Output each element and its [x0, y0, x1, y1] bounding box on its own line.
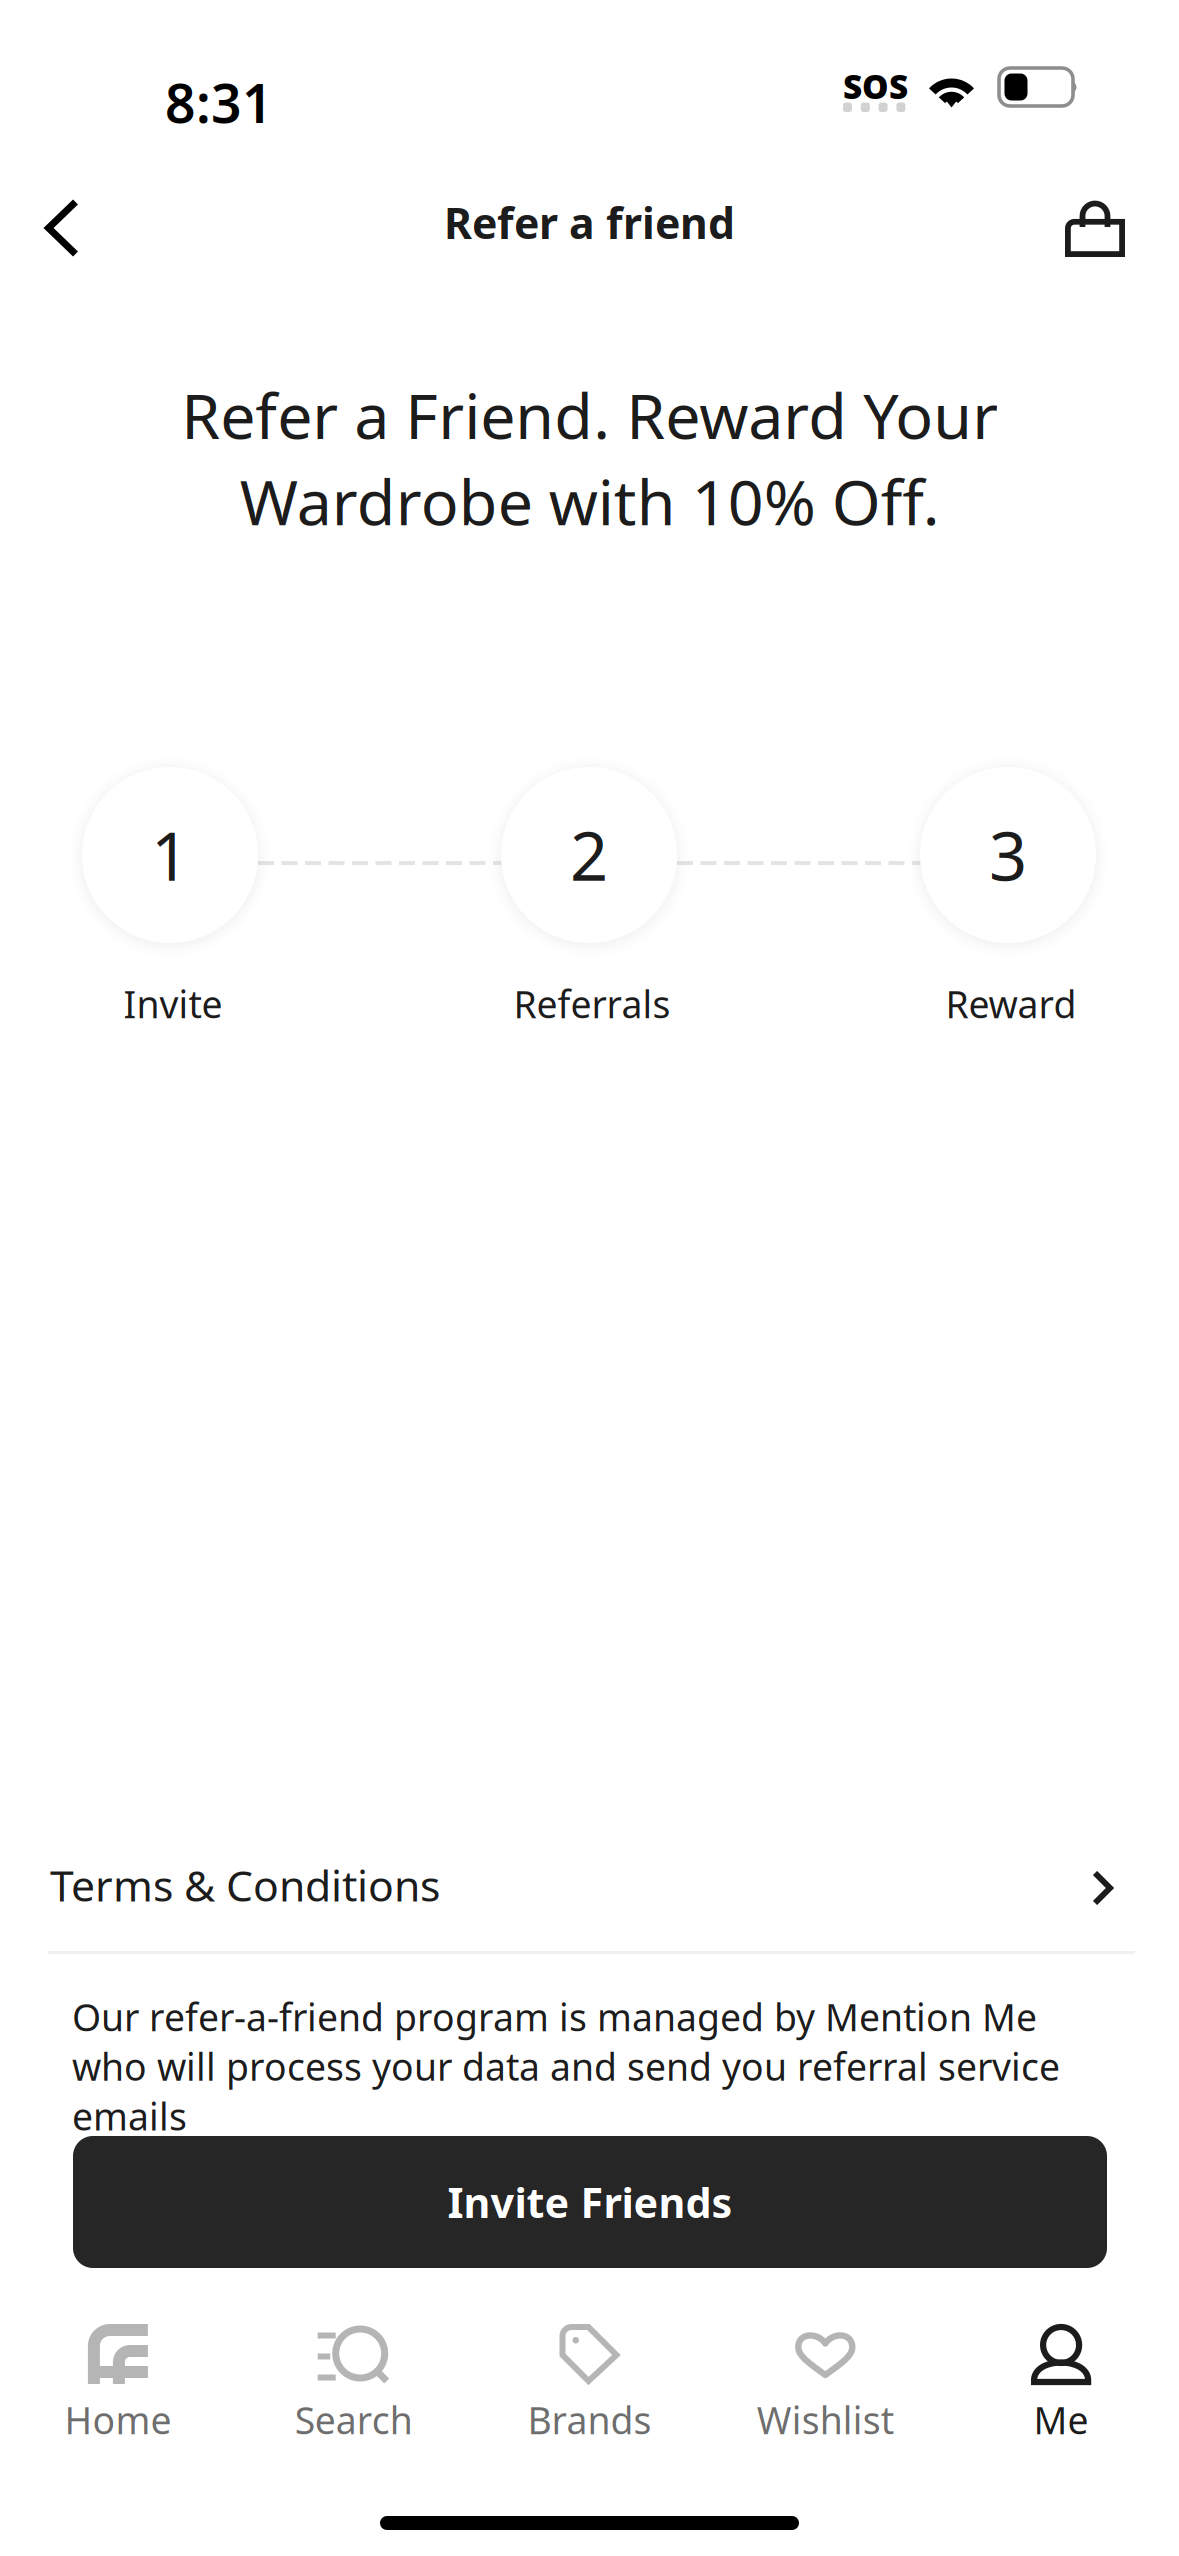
- staticText: 3: [989, 811, 1027, 899]
- button[interactable]: Wishlist: [707, 2324, 943, 2444]
- staticText: Referrals: [513, 979, 670, 1029]
- button[interactable]: Invite Friends: [73, 2136, 1107, 2268]
- button[interactable]: Me: [943, 2324, 1179, 2444]
- staticText: SOS: [843, 64, 908, 108]
- staticText: Terms & Conditions: [50, 1857, 440, 1913]
- staticText: 2: [570, 811, 608, 899]
- button[interactable]: Search: [236, 2324, 472, 2444]
- staticText: Refer a Friend. Reward Your Wardrobe wit…: [181, 373, 998, 542]
- staticText: Invite Friends: [447, 2175, 732, 2229]
- staticText: Invite: [123, 979, 222, 1029]
- button[interactable]: Back: [7, 173, 117, 283]
- button[interactable]: Home: [0, 2324, 236, 2444]
- button[interactable]: Brands: [472, 2324, 707, 2444]
- staticText: Our refer-a-friend program is managed by…: [72, 1992, 1060, 2141]
- button[interactable]: Shopping bag: [1040, 172, 1150, 282]
- staticText: Brands: [527, 2395, 651, 2445]
- staticText: Me: [1034, 2395, 1089, 2445]
- staticText: Refer a friend: [444, 194, 735, 251]
- staticText: Wishlist: [757, 2395, 894, 2445]
- staticText: 8:31: [165, 67, 273, 138]
- button[interactable]: Terms & Conditions: [0, 1830, 1179, 1940]
- staticText: 1: [151, 811, 189, 899]
- staticText: Search: [295, 2395, 413, 2445]
- staticText: Reward: [945, 979, 1076, 1029]
- staticText: Home: [64, 2395, 171, 2445]
